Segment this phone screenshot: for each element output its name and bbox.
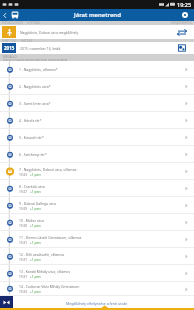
staticText: 12 - Déli vasútszéle, villamos <box>19 252 65 257</box>
staticText: 13 - Kandó Mihály utca, villamos <box>19 269 71 274</box>
staticText: 8 - Cserésik utca <box>19 184 45 189</box>
button[interactable]: Route <box>9 9 21 21</box>
button[interactable]: Open stop <box>178 231 194 248</box>
staticText: 6 - Széchenyi tér* <box>19 152 47 157</box>
button[interactable]: 14 - Csokonai Vitéz Mihály Gimnázium <box>0 282 194 296</box>
staticText: 2015. november 16, kedd <box>20 46 170 51</box>
staticText: 7 - Nagykőrös, Dobozi utca, villamos <box>19 167 77 172</box>
button[interactable]: 2015 <box>0 42 194 54</box>
button[interactable]: Open stop <box>178 163 194 180</box>
button[interactable]: 6 - Széchenyi tér* <box>0 146 194 163</box>
button[interactable]: 7 - Nagykőrös, Dobozi utca, villamos <box>0 163 194 180</box>
staticText: +1 perc <box>30 258 42 262</box>
button[interactable]: Open stop <box>178 197 194 214</box>
staticText: 19:29 <box>19 207 28 211</box>
staticText: 10 - Malter utca <box>19 218 44 223</box>
button[interactable]: Map <box>0 296 13 308</box>
staticText: Nagykőrös, Dobozi utca megállóhely <box>20 30 170 35</box>
staticText: 1 - Nagykőrös, villamos* <box>19 67 58 72</box>
staticText: JÁRAT IDŐ <box>2 39 17 42</box>
staticText: +1 perc <box>30 173 42 177</box>
staticText: 9 - Dobozi Gallngo utca <box>19 201 56 206</box>
button[interactable]: Open stop <box>178 180 194 197</box>
button[interactable]: 1 - Nagykőrös, villamos* <box>0 61 194 78</box>
button[interactable]: Swap direction <box>170 25 194 39</box>
staticText: 19:31 <box>19 258 28 262</box>
staticText: 2015 <box>4 45 15 51</box>
button[interactable]: 3 - Szent Imre utca* <box>0 95 194 112</box>
button[interactable]: Open stop <box>178 112 194 129</box>
button[interactable]: Info <box>178 9 192 21</box>
staticText: 3 - Szent Imre utca* <box>19 101 51 106</box>
staticText: +1 perc <box>30 224 42 228</box>
staticText: +1 perc <box>30 207 42 211</box>
staticText: 4 - Hársfa tér* <box>19 118 42 123</box>
staticText: 19:25 <box>177 1 192 8</box>
button[interactable]: Open stop <box>178 248 194 265</box>
button[interactable]: Open stop <box>178 265 194 282</box>
button[interactable]: 8 - Cserésik utca <box>0 180 194 197</box>
staticText: Megállóhely elhelyezése a fenti utcán <box>66 301 128 306</box>
button[interactable]: Open stop <box>178 61 194 78</box>
staticText: MEGJELENÍTÉS <box>171 21 192 25</box>
staticText: +1 perc <box>30 190 42 194</box>
button[interactable]: Pick date <box>170 42 194 54</box>
staticText: +1 perc <box>30 275 42 279</box>
button[interactable]: Open stop <box>178 282 194 296</box>
button[interactable]: 10 - Malter utca <box>0 214 194 231</box>
button[interactable]: 2 - Nagykőrös utca* <box>0 78 194 95</box>
staticText: 11 - Dienes László Gimnázium, villamos <box>19 235 82 240</box>
staticText: 19:23 <box>19 173 28 177</box>
button[interactable]: Open stop <box>178 95 194 112</box>
staticText: 19:31 <box>19 275 28 279</box>
staticText: +1 perc <box>30 241 42 245</box>
staticText: MEGÁLLÓHELY <box>2 21 23 25</box>
staticText: 19:33 <box>19 290 28 294</box>
button[interactable]: Nagykőrös, Dobozi utca megállóhely <box>0 25 194 39</box>
button[interactable]: 11 - Dienes László Gimnázium, villamos <box>0 231 194 248</box>
staticText: Járat menetrend <box>74 11 121 19</box>
staticText: MEGÁLLÓHELY MEGJELENÍTÉSE IDŐRENDBEN <box>3 59 68 61</box>
button[interactable]: Open stop <box>178 129 194 146</box>
button[interactable]: 13 - Kandó Mihály utca, villamos <box>0 265 194 282</box>
staticText: +1 perc <box>30 290 42 294</box>
staticText: 5 - Kossuth tér* <box>19 135 44 140</box>
staticText: 19:30 <box>19 224 28 228</box>
staticText: ÚTVONAL <box>27 21 41 25</box>
button[interactable]: 12 - Déli vasútszéle, villamos <box>0 248 194 265</box>
button[interactable]: 4 - Hársfa tér* <box>0 112 194 129</box>
staticText: 14 - Csokonai Vitéz Mihály Gimnázium <box>19 284 80 289</box>
button[interactable]: Open stop <box>178 214 194 231</box>
staticText: NAPTÁR <box>21 39 33 42</box>
staticText: 2 - Nagykőrös utca* <box>19 84 51 89</box>
button[interactable]: 5 - Kossuth tér* <box>0 129 194 146</box>
staticText: MEGÁLLÓ <box>3 55 17 59</box>
button[interactable]: 9 - Dobozi Gallngo utca <box>0 197 194 214</box>
staticText: 19:27 <box>19 190 28 194</box>
button[interactable]: Back <box>0 9 9 21</box>
button[interactable]: Open stop <box>178 146 194 163</box>
button[interactable]: Open stop <box>178 78 194 95</box>
staticText: 19:31 <box>19 241 28 245</box>
